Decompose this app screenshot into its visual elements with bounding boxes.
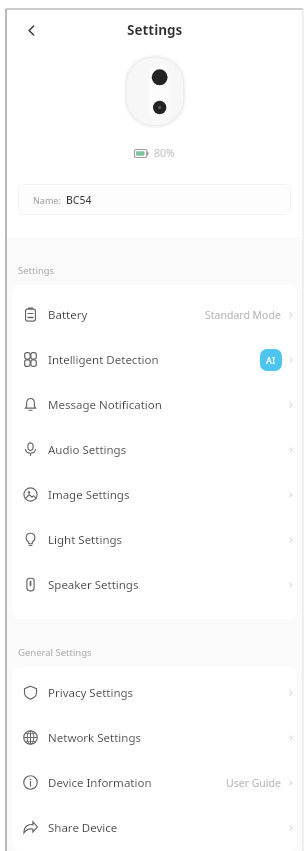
staticText: Message Notification — [48, 397, 162, 413]
staticText: 80% — [154, 146, 175, 160]
button[interactable]: Share Device — [12, 805, 297, 850]
staticText: User Guide — [226, 776, 281, 790]
button[interactable]: Name: — [18, 184, 291, 215]
button[interactable]: Light Settings — [12, 517, 297, 562]
staticText: General Settings — [18, 646, 92, 659]
button[interactable]: Device Information — [12, 760, 297, 805]
staticText: Speaker Settings — [48, 577, 139, 593]
staticText: Share Device — [48, 820, 118, 836]
staticText: Standard Mode — [205, 308, 281, 322]
button[interactable]: Battery — [12, 292, 297, 337]
staticText: Name: — [33, 194, 61, 206]
button[interactable]: Image Settings — [12, 472, 297, 517]
staticText: Device Information — [48, 775, 152, 791]
staticText: Battery — [48, 307, 88, 323]
button[interactable]: Audio Settings — [12, 427, 297, 472]
button[interactable]: Intelligent Detection — [12, 337, 297, 382]
staticText: AI — [266, 354, 276, 366]
staticText: Privacy Settings — [48, 685, 134, 701]
staticText: Settings — [18, 264, 55, 277]
staticText: Intelligent Detection — [48, 352, 159, 368]
staticText: Network Settings — [48, 730, 142, 746]
staticText: Settings — [127, 21, 183, 39]
staticText: Audio Settings — [48, 442, 127, 458]
staticText: BC54 — [66, 193, 92, 207]
button[interactable]: Back — [16, 15, 46, 45]
button[interactable]: Speaker Settings — [12, 562, 297, 607]
button[interactable]: Network Settings — [12, 715, 297, 760]
button[interactable]: Privacy Settings — [12, 670, 297, 715]
staticText: Light Settings — [48, 532, 123, 548]
button[interactable]: Message Notification — [12, 382, 297, 427]
staticText: Image Settings — [48, 487, 130, 503]
